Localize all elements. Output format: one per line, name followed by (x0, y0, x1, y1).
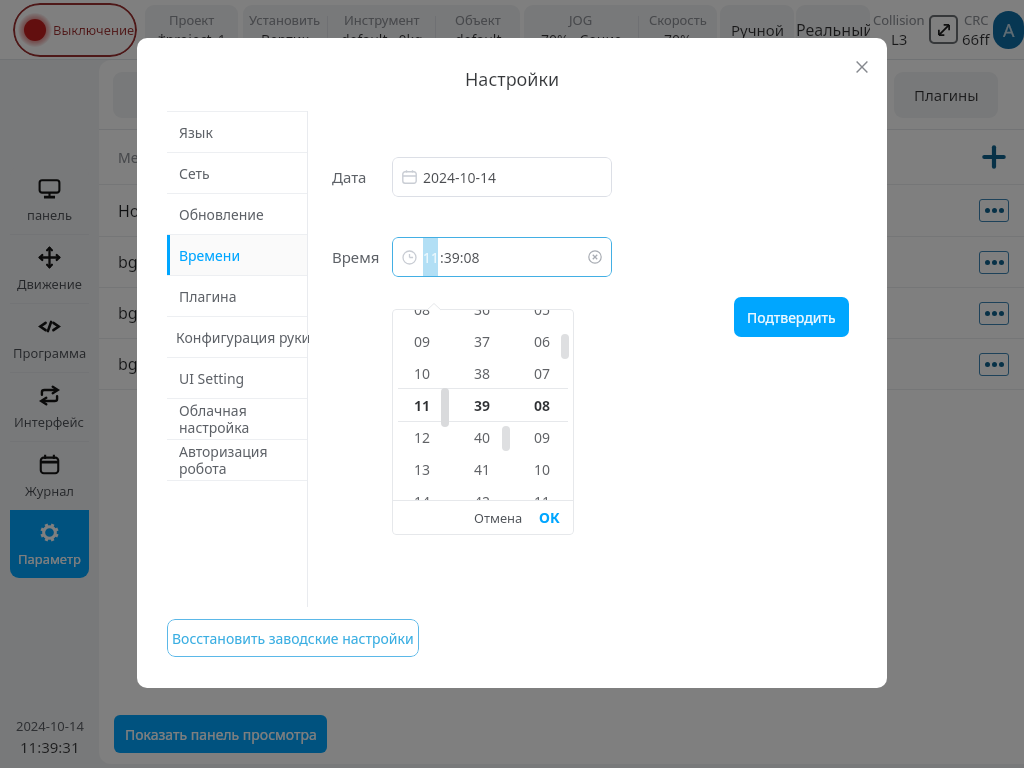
button[interactable]: bgs_3 (99, 339, 1024, 389)
button[interactable]: 05 (512, 309, 572, 325)
button[interactable]: 11 (392, 389, 452, 421)
button[interactable]: bgs_1 (99, 237, 1024, 287)
button[interactable]: 08 (512, 389, 572, 421)
button[interactable]: Установить (243, 5, 520, 55)
button[interactable]: UI Setting (167, 358, 307, 398)
button[interactable]: 11 (392, 237, 612, 277)
button[interactable]: bgs_2 (99, 288, 1024, 338)
staticText: 09 (534, 428, 551, 447)
staticText: Системные (418, 85, 500, 105)
staticText: 41 (474, 460, 491, 479)
staticText: 37 (474, 332, 491, 351)
button[interactable]: Времени (167, 235, 307, 275)
staticText: Сеть (179, 164, 210, 183)
button[interactable]: 40 (452, 421, 512, 453)
button[interactable]: 09 (512, 421, 572, 453)
button[interactable]: Обновление (167, 194, 307, 234)
staticText: 08 (534, 396, 551, 415)
button[interactable]: Проект (145, 5, 238, 55)
staticText: Установить (249, 11, 321, 29)
button[interactable]: Параметр (10, 510, 89, 578)
button[interactable]: More options (979, 353, 1009, 376)
button[interactable]: Сеть (167, 153, 307, 193)
staticText: 38 (474, 364, 491, 383)
button[interactable]: 2024-10-14 (392, 157, 612, 197)
staticText: 05 (534, 309, 551, 319)
button[interactable]: Плагина (167, 276, 307, 316)
staticText: Движение (17, 275, 82, 293)
staticText: bgs_2 (118, 302, 162, 324)
button[interactable]: Close (849, 54, 875, 80)
staticText: 70% Социе (541, 30, 622, 49)
button[interactable]: Fullscreen (929, 15, 958, 44)
button[interactable]: House (99, 185, 1024, 236)
button[interactable]: 14 (392, 485, 452, 500)
button[interactable]: More options (979, 302, 1009, 325)
button[interactable]: 38 (452, 357, 512, 389)
button[interactable]: Программа (10, 304, 89, 372)
staticText: 13 (414, 460, 431, 479)
staticText: 09 (414, 332, 431, 351)
button[interactable]: More options (979, 199, 1009, 222)
button[interactable]: Системные (393, 72, 525, 118)
button[interactable]: Язык (167, 112, 307, 152)
staticText: Подтвердить (747, 308, 836, 327)
button[interactable]: 37 (452, 325, 512, 357)
button[interactable]: панель (10, 166, 89, 234)
button[interactable]: Оснастка (113, 72, 231, 118)
button[interactable]: More options (979, 251, 1009, 274)
button[interactable]: Add (979, 142, 1009, 172)
staticText: 40 (474, 428, 491, 447)
button[interactable]: Ручной (720, 5, 794, 55)
button[interactable]: 13 (392, 453, 452, 485)
button[interactable]: Интерфейс (10, 373, 89, 441)
button[interactable]: 42 (452, 485, 512, 500)
button[interactable]: 08 (392, 309, 452, 325)
button[interactable]: 06 (512, 325, 572, 357)
button[interactable]: Отмена (468, 504, 529, 532)
staticText: Настройки (465, 67, 560, 92)
staticText: Дата (332, 167, 367, 187)
staticText: Интерфейс (14, 413, 85, 431)
button[interactable]: Плагины (894, 72, 998, 118)
staticText: 39 (474, 396, 491, 415)
staticText: 07 (534, 364, 551, 383)
button[interactable]: Журнал (10, 442, 89, 510)
staticText: 36 (474, 309, 491, 319)
staticText: 14 (414, 492, 431, 500)
button[interactable]: 09 (392, 325, 452, 357)
staticText: Язык (179, 123, 213, 142)
button[interactable]: Account (993, 11, 1024, 49)
staticText: Параметр (18, 550, 81, 568)
button[interactable]: 12 (392, 421, 452, 453)
button[interactable]: Показать панель просмотра (114, 715, 327, 753)
button[interactable]: 10 (392, 357, 452, 389)
button[interactable]: Движение (10, 235, 89, 303)
button[interactable]: Восстановить заводские настройки (167, 619, 419, 657)
button[interactable]: 41 (452, 453, 512, 485)
button[interactable]: Memory (99, 130, 1024, 184)
staticText: 06 (534, 332, 551, 351)
button[interactable]: Облачная настройка (167, 399, 307, 439)
staticText: A (1003, 18, 1015, 43)
button[interactable]: 39 (452, 389, 512, 421)
staticText: Плагина (179, 287, 237, 306)
staticText: 12 (414, 428, 431, 447)
button[interactable]: 36 (452, 309, 512, 325)
button[interactable]: 10 (512, 453, 572, 485)
button[interactable]: Конфигурация руки (167, 317, 307, 357)
staticText: 11 (534, 492, 551, 500)
staticText: UI Setting (179, 369, 245, 388)
button[interactable]: ОК (533, 503, 566, 532)
staticText: Выключение (53, 21, 135, 39)
staticText: Обновление (179, 205, 264, 224)
button[interactable]: Подтвердить (734, 297, 849, 337)
staticText: Облачная настройка (179, 401, 250, 437)
button[interactable]: JOG (524, 5, 717, 55)
button[interactable]: Выключение (13, 3, 137, 57)
button[interactable]: Реальный (796, 5, 870, 55)
button[interactable]: Авторизация робота (167, 440, 307, 480)
button[interactable]: 11 (512, 485, 572, 500)
button[interactable]: 07 (512, 357, 572, 389)
